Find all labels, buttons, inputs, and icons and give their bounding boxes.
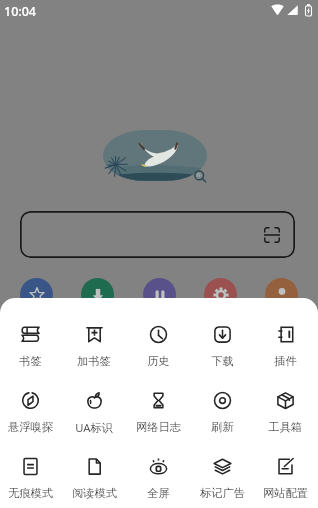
button[interactable]: Account: [265, 278, 298, 311]
staticText: 网络日志: [136, 420, 181, 434]
staticText: 悬浮嗅探: [8, 420, 53, 434]
button[interactable]: Scan QR code: [20, 211, 295, 258]
staticText: 插件: [274, 354, 297, 368]
staticText: 历史: [147, 354, 170, 368]
button[interactable]: Settings: [204, 278, 237, 311]
staticText: 10:04: [4, 3, 37, 20]
button[interactable]: 刷新: [190, 391, 254, 434]
button[interactable]: 阅读模式: [62, 457, 126, 500]
button[interactable]: Downloads: [81, 278, 114, 311]
button[interactable]: 插件: [254, 325, 316, 368]
button[interactable]: 全屏: [126, 457, 190, 500]
button[interactable]: Scan QR code: [264, 227, 280, 243]
staticText: 刷新: [211, 420, 234, 434]
button[interactable]: Favorites: [20, 278, 53, 311]
staticText: 书签: [19, 354, 42, 368]
button[interactable]: 无痕模式: [0, 457, 62, 500]
button[interactable]: 网络日志: [126, 391, 190, 434]
button[interactable]: 加书签: [62, 325, 126, 368]
button[interactable]: 书签: [0, 325, 62, 368]
staticText: 网站配置: [263, 486, 308, 500]
staticText: 加书签: [77, 354, 111, 368]
staticText: UA标识: [75, 420, 113, 435]
button[interactable]: 下载: [190, 325, 254, 368]
button[interactable]: 悬浮嗅探: [0, 391, 62, 434]
staticText: 无痕模式: [8, 486, 53, 500]
button[interactable]: 网站配置: [254, 457, 316, 500]
staticText: 阅读模式: [72, 486, 117, 500]
staticText: 下载: [211, 354, 234, 368]
button[interactable]: 工具箱: [254, 391, 316, 434]
button[interactable]: Music: [143, 278, 176, 311]
button[interactable]: 标记广告: [190, 457, 254, 500]
button[interactable]: UA标识: [62, 391, 126, 435]
staticText: 全屏: [147, 486, 170, 500]
button[interactable]: 历史: [126, 325, 190, 368]
staticText: 标记广告: [200, 486, 245, 500]
staticText: 工具箱: [268, 420, 302, 434]
